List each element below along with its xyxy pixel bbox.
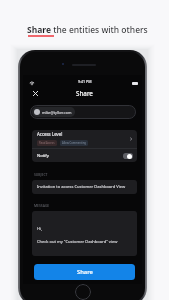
button[interactable]: mike@tylker.com <box>30 105 136 119</box>
staticText: mike@tylker.com <box>42 110 72 115</box>
staticText: Invitation to access Customer Dashboard … <box>37 184 126 190</box>
button[interactable]: Hi, <box>32 211 137 256</box>
staticText: MESSAGE <box>34 203 50 208</box>
staticText: Share <box>77 268 93 276</box>
staticText: Check out my "Customer Dashboard" view <box>37 239 118 245</box>
button[interactable]: Access Level <box>32 130 137 148</box>
button[interactable]: Share <box>34 264 135 280</box>
staticText: Access Level <box>37 131 63 137</box>
staticText: Hi, <box>37 226 43 232</box>
staticText: Share the entities with others <box>27 24 148 36</box>
button[interactable]: Notify <box>32 149 137 162</box>
staticText: Notify <box>37 153 123 159</box>
staticText: Share <box>76 89 93 98</box>
button[interactable]: Home <box>75 284 91 300</box>
staticText: 9:41 PM <box>78 79 92 84</box>
staticText: Read Access <box>39 141 55 145</box>
button[interactable]: Invitation to access Customer Dashboard … <box>32 180 137 194</box>
staticText: Allow Commenting <box>62 141 86 145</box>
button[interactable]: Close <box>29 87 41 99</box>
staticText: SUBJECT <box>34 172 48 177</box>
